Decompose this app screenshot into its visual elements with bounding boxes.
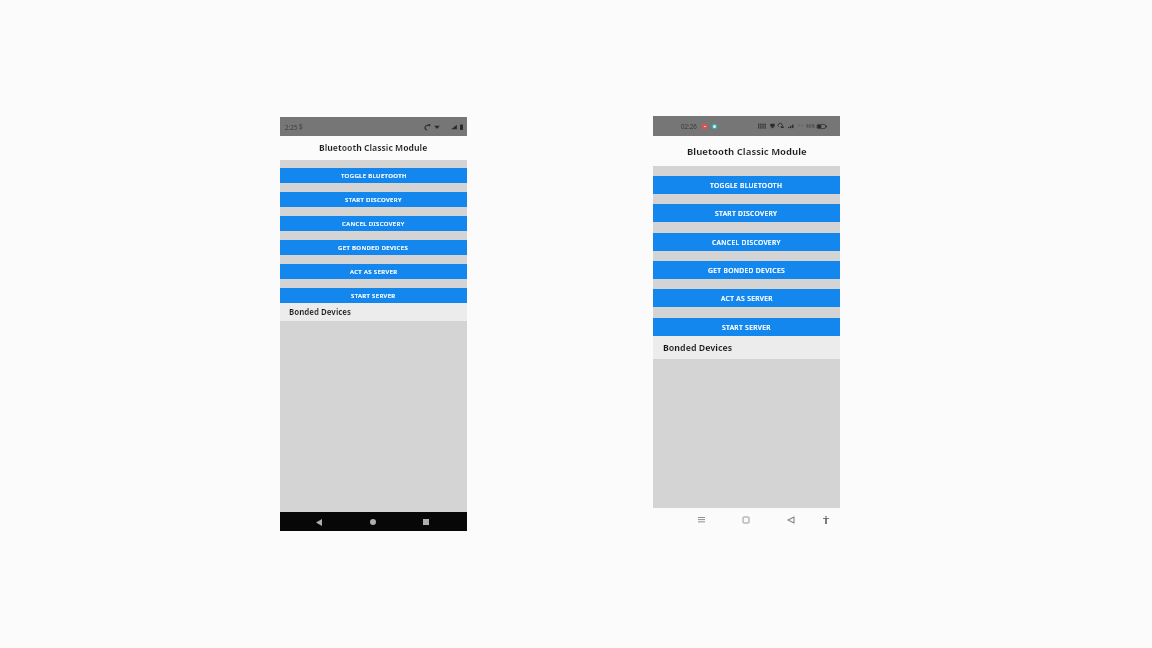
staticText: START SERVER (351, 292, 396, 300)
staticText: Bonded Devices (663, 342, 733, 354)
button[interactable]: Back (784, 513, 797, 526)
staticText: Bluetooth Classic Module (319, 142, 428, 154)
staticText: CANCEL DISCOVERY (342, 220, 405, 228)
staticText: ACT AS SERVER (350, 268, 398, 276)
staticText: $ (299, 122, 303, 131)
button[interactable]: Recents (419, 515, 433, 529)
staticText: 46% (806, 123, 815, 129)
staticText: GET BONDED DEVICES (708, 266, 785, 275)
staticText: TOGGLE BLUETOOTH (710, 181, 783, 190)
button[interactable]: Recents (739, 513, 752, 526)
staticText: ACT AS SERVER (721, 294, 773, 303)
button[interactable]: Back (312, 515, 326, 529)
button[interactable]: TOGGLE BLUETOOTH (653, 176, 840, 194)
button[interactable]: Home (366, 515, 380, 529)
button[interactable]: Menu (695, 513, 708, 526)
staticText: START SERVER (722, 323, 771, 332)
button[interactable]: GET BONDED DEVICES (653, 261, 840, 279)
button[interactable]: START SERVER (280, 288, 467, 303)
button[interactable]: CANCEL DISCOVERY (280, 216, 467, 231)
staticText: Bonded Devices (289, 307, 351, 318)
staticText: Bluetooth Classic Module (687, 145, 807, 158)
button[interactable]: START DISCOVERY (653, 204, 840, 222)
staticText: 02:26 (681, 122, 697, 130)
staticText: GET BONDED DEVICES (338, 244, 409, 252)
staticText: TOGGLE BLUETOOTH (341, 172, 407, 180)
button[interactable]: CANCEL DISCOVERY (653, 233, 840, 251)
button[interactable]: Accessibility (819, 513, 832, 526)
button[interactable]: ACT AS SERVER (653, 289, 840, 307)
button[interactable]: START DISCOVERY (280, 192, 467, 207)
button[interactable]: ACT AS SERVER (280, 264, 467, 279)
button[interactable]: GET BONDED DEVICES (280, 240, 467, 255)
staticText: START DISCOVERY (715, 209, 778, 218)
staticText: 2:25 (285, 123, 298, 131)
staticText: CANCEL DISCOVERY (712, 238, 781, 247)
staticText: START DISCOVERY (345, 196, 402, 204)
button[interactable]: TOGGLE BLUETOOTH (280, 168, 467, 183)
button[interactable]: START SERVER (653, 318, 840, 336)
